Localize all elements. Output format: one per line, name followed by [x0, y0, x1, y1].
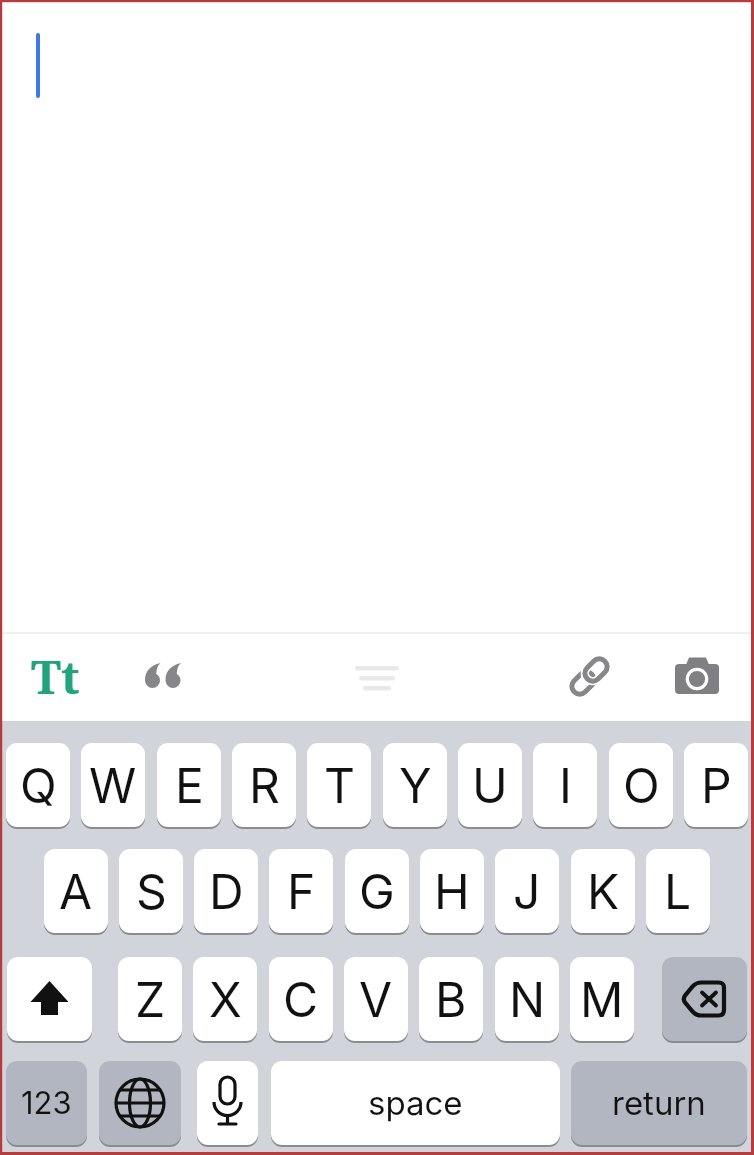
staticText: G [359, 862, 395, 920]
button[interactable]: E [157, 743, 221, 827]
staticText: L [664, 862, 692, 920]
staticText: W [89, 756, 137, 814]
button[interactable] [662, 957, 747, 1041]
button[interactable]: Q [6, 743, 70, 827]
button[interactable]: C [269, 957, 333, 1041]
staticText: A [59, 862, 93, 920]
button[interactable] [138, 650, 190, 698]
staticText: F [287, 862, 316, 920]
button[interactable]: Tt [26, 645, 84, 699]
staticText: Q [20, 756, 57, 814]
button[interactable]: S [119, 849, 183, 933]
button[interactable]: F [269, 849, 333, 933]
button[interactable]: W [81, 743, 145, 827]
button[interactable]: I [533, 743, 597, 827]
button[interactable]: space [271, 1061, 560, 1145]
button[interactable]: O [609, 743, 673, 827]
staticText: B [435, 970, 467, 1028]
button[interactable]: X [193, 957, 257, 1041]
button[interactable] [197, 1061, 258, 1145]
staticText: V [359, 970, 393, 1028]
staticText: Tt [31, 645, 80, 699]
staticText: U [472, 756, 508, 814]
staticText: E [175, 756, 204, 814]
staticText: Y [399, 756, 432, 814]
button[interactable]: U [458, 743, 522, 827]
button[interactable]: D [194, 849, 258, 933]
staticText: N [509, 970, 546, 1028]
staticText: C [283, 970, 319, 1028]
staticText: T [324, 756, 355, 814]
staticText: M [580, 970, 624, 1028]
button[interactable] [99, 1061, 181, 1145]
button[interactable]: N [495, 957, 559, 1041]
button[interactable]: L [646, 849, 710, 933]
button[interactable]: return [571, 1061, 747, 1145]
staticText: P [701, 756, 732, 814]
button[interactable]: K [571, 849, 635, 933]
staticText: space [368, 1083, 463, 1123]
button[interactable]: Z [118, 957, 182, 1041]
button[interactable]: J [495, 849, 559, 933]
staticText: H [434, 862, 470, 920]
button[interactable] [565, 650, 617, 702]
button[interactable] [671, 650, 723, 702]
button[interactable]: T [307, 743, 371, 827]
staticText: Z [135, 970, 166, 1028]
button[interactable] [7, 957, 92, 1041]
button[interactable]: A [44, 849, 108, 933]
button[interactable]: P [684, 743, 748, 827]
button[interactable]: 123 [6, 1061, 87, 1145]
staticText: I [559, 756, 572, 814]
staticText: X [209, 970, 242, 1028]
staticText: R [249, 756, 280, 814]
staticText: return [612, 1083, 706, 1123]
staticText: D [209, 862, 244, 920]
staticText: O [623, 756, 660, 814]
staticText: 123 [21, 1084, 72, 1122]
button[interactable]: Y [383, 743, 447, 827]
button[interactable]: V [344, 957, 408, 1041]
button[interactable] [351, 650, 403, 702]
button[interactable]: M [570, 957, 634, 1041]
staticText: S [136, 862, 167, 920]
button[interactable]: H [420, 849, 484, 933]
button[interactable]: G [345, 849, 409, 933]
button[interactable]: B [419, 957, 483, 1041]
button[interactable]: R [232, 743, 296, 827]
staticText: J [513, 862, 541, 920]
staticText: K [587, 862, 620, 920]
